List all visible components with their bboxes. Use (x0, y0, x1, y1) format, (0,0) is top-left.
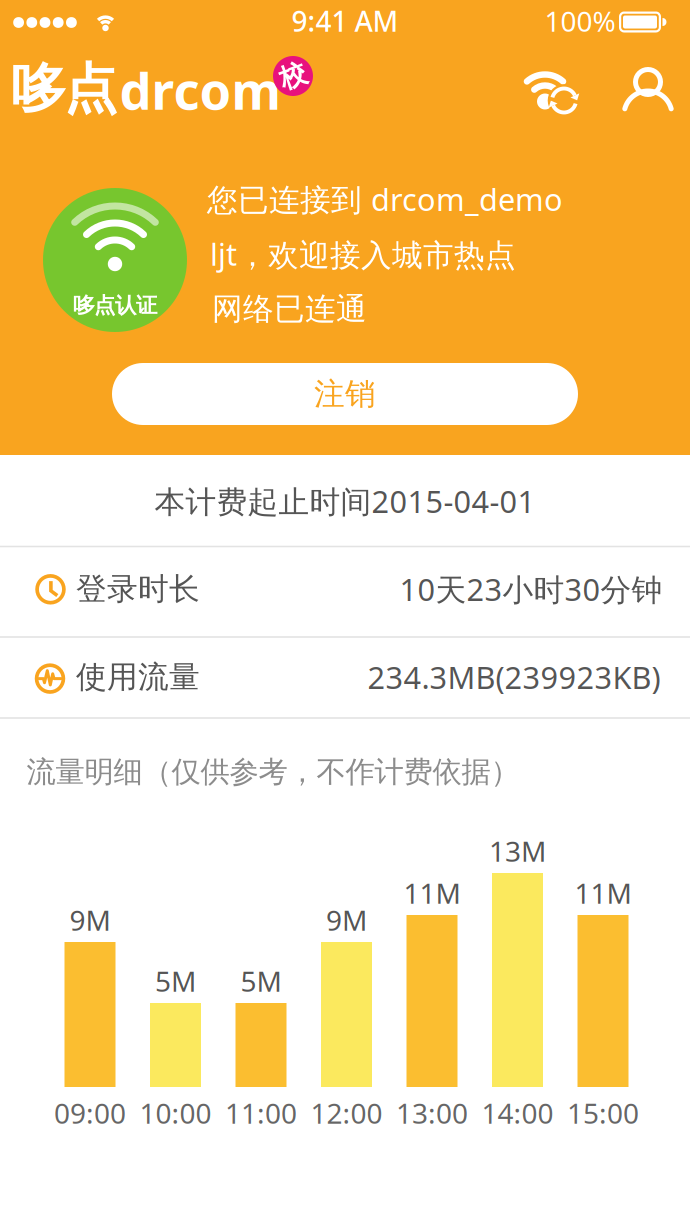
staticText: 您已连接到 drcom_demo (207, 179, 563, 219)
staticText: 100% (544, 2, 615, 40)
button[interactable]: Account (620, 69, 676, 115)
staticText: 注销 (314, 375, 376, 413)
staticText: drcom (119, 56, 280, 124)
staticText: 本计费起止时间2015-04-01 (154, 481, 535, 521)
staticText: 10天23小时30分钟 (399, 569, 662, 609)
staticText: 11M (574, 874, 631, 912)
staticText: 9:41 AM (291, 2, 398, 40)
staticText: 13:00 (396, 1094, 468, 1132)
button[interactable]: Reconnect WiFi (513, 65, 593, 121)
staticText: 10:00 (139, 1094, 211, 1132)
staticText: 13M (489, 832, 546, 870)
staticText: 使用流量 (76, 658, 200, 696)
button[interactable]: 注销 (112, 363, 578, 425)
staticText: 校 (279, 60, 306, 92)
staticText: 9M (326, 901, 367, 939)
staticText: 14:00 (481, 1094, 553, 1132)
staticText: 234.3MB(239923KB) (367, 657, 660, 697)
staticText: 11:00 (225, 1094, 297, 1132)
staticText: 网络已连通 (212, 290, 367, 328)
staticText: 哆点认证 (73, 292, 157, 319)
staticText: 哆点 (11, 56, 117, 122)
staticText: ljt，欢迎接入城市热点 (210, 234, 516, 274)
staticText: 9M (69, 901, 110, 939)
staticText: 流量明细（仅供参考，不作计费依据） (26, 754, 519, 790)
staticText: 5M (155, 962, 196, 1000)
staticText: 5M (240, 962, 281, 1000)
staticText: 登录时长 (76, 570, 200, 608)
staticText: 15:00 (567, 1094, 639, 1132)
staticText: 12:00 (310, 1094, 382, 1132)
staticText: 09:00 (54, 1094, 126, 1132)
staticText: 11M (403, 874, 460, 912)
